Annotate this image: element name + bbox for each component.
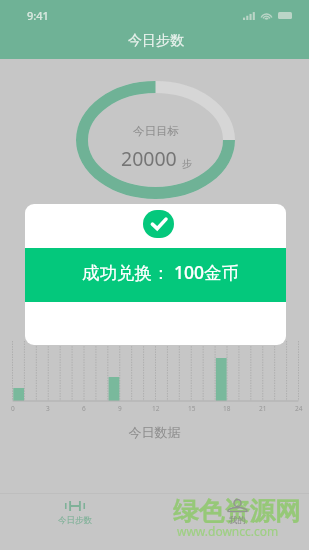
- staticText: www.downcc.com: [177, 523, 279, 539]
- staticText: 6: [82, 404, 86, 413]
- staticText: 步: [182, 157, 192, 170]
- staticText: 24: [295, 404, 303, 413]
- staticText: 3: [46, 404, 50, 413]
- staticText: 今日数据: [0, 424, 309, 440]
- staticText: 今日步数: [58, 515, 92, 526]
- staticText: 20000: [121, 145, 177, 172]
- staticText: 成功兑换： 100金币: [82, 260, 240, 284]
- staticText: 绿色资源网: [173, 495, 301, 527]
- staticText: 今日目标: [133, 124, 179, 138]
- staticText: 我的: [229, 515, 246, 526]
- staticText: 12: [152, 404, 160, 413]
- staticText: 0: [11, 404, 15, 413]
- staticText: 21: [259, 404, 267, 413]
- staticText: 15: [188, 404, 196, 413]
- staticText: 18: [223, 404, 231, 413]
- staticText: 9: [118, 404, 122, 413]
- staticText: 9:41: [27, 8, 49, 23]
- button[interactable]: 我的: [195, 494, 279, 550]
- staticText: 今日步数: [128, 32, 184, 50]
- button[interactable]: 今日步数: [33, 494, 117, 550]
